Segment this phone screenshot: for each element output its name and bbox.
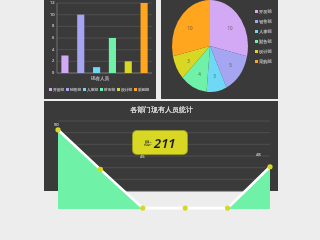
staticText: 211 — [154, 134, 176, 152]
button[interactable]: 10 — [161, 0, 278, 99]
button[interactable]: 12 — [44, 0, 156, 99]
staticText: 人事部 — [259, 29, 272, 34]
staticText: 10 — [187, 25, 193, 31]
staticText: 10 — [227, 25, 233, 31]
staticText: 财务部 — [259, 39, 272, 44]
staticText: 采购部 — [138, 87, 150, 92]
staticText: 8 — [52, 23, 55, 28]
staticText: 销售部 — [259, 19, 272, 24]
staticText: 0 — [52, 70, 55, 75]
staticText: 开发部 — [259, 9, 272, 14]
staticText: 3 — [187, 58, 190, 64]
staticText: 4 — [198, 71, 201, 77]
staticText: 总: — [144, 139, 152, 147]
staticText: 90 — [54, 122, 59, 127]
staticText: 销售部 — [70, 87, 82, 92]
button[interactable]: 各部门现有人员统计 — [44, 101, 278, 191]
staticText: 采购部 — [259, 59, 272, 64]
staticText: 45 — [140, 154, 145, 159]
staticText: 5 — [229, 62, 232, 68]
staticText: 2 — [52, 58, 55, 63]
staticText: 48 — [256, 152, 261, 157]
staticText: 6 — [52, 35, 55, 40]
staticText: 设计部 — [121, 87, 133, 92]
button[interactable]: 总计 211 — [133, 131, 187, 154]
staticText: 4 — [52, 47, 55, 52]
staticText: 3 — [213, 73, 216, 79]
staticText: 10 — [50, 12, 55, 17]
staticText: 现有人员 — [91, 76, 109, 82]
staticText: 人事部 — [87, 87, 99, 92]
staticText: 12 — [50, 0, 55, 5]
staticText: 开发部 — [53, 87, 65, 92]
staticText: 各部门现有人员统计 — [130, 105, 193, 114]
staticText: 设计部 — [259, 49, 272, 54]
staticText: 财务部 — [104, 87, 116, 92]
